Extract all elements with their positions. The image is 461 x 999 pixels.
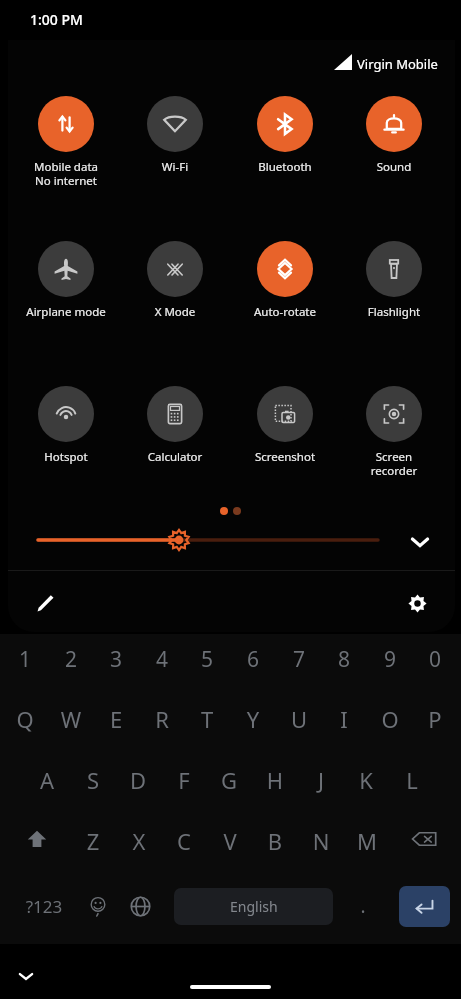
staticText: X bbox=[119, 826, 159, 856]
staticText: B bbox=[255, 826, 295, 856]
staticText: I bbox=[324, 704, 364, 734]
button[interactable]: ?123 bbox=[16, 895, 72, 918]
button[interactable]: Screen recorder bbox=[348, 386, 440, 478]
button[interactable]: Shift bbox=[16, 818, 58, 860]
button[interactable]: Calculator bbox=[129, 386, 221, 465]
staticText: P bbox=[415, 704, 455, 734]
staticText: U bbox=[279, 704, 319, 734]
staticText: Q bbox=[5, 704, 45, 734]
staticText: Mobile data No internet bbox=[20, 159, 112, 188]
staticText: 5 bbox=[187, 645, 227, 674]
staticText: Sound bbox=[348, 159, 440, 175]
button[interactable]: English bbox=[174, 888, 333, 925]
staticText: 1:00 PM bbox=[30, 10, 83, 29]
staticText: V bbox=[210, 826, 250, 856]
staticText: E bbox=[96, 704, 136, 734]
staticText: Y bbox=[233, 704, 273, 734]
staticText: G bbox=[209, 765, 249, 795]
button[interactable]: Bluetooth bbox=[239, 96, 331, 175]
staticText: L bbox=[392, 765, 432, 795]
staticText: 1 bbox=[5, 645, 45, 674]
button[interactable]: Change language bbox=[118, 884, 162, 928]
staticText: D bbox=[118, 765, 158, 795]
staticText: 2 bbox=[51, 645, 91, 674]
button[interactable]: Hotspot bbox=[20, 386, 112, 465]
staticText: Bluetooth bbox=[239, 159, 331, 175]
button[interactable]: Screenshot bbox=[239, 386, 331, 465]
staticText: J bbox=[301, 765, 341, 795]
staticText: 9 bbox=[370, 645, 410, 674]
staticText: Virgin Mobile bbox=[357, 55, 438, 73]
button[interactable]: Settings bbox=[398, 584, 436, 622]
staticText: Screen recorder bbox=[348, 449, 440, 478]
staticText: 6 bbox=[233, 645, 273, 674]
button[interactable]: Edit tiles bbox=[26, 584, 64, 622]
staticText: N bbox=[301, 826, 341, 856]
staticText: English bbox=[230, 897, 278, 916]
staticText: A bbox=[27, 765, 67, 795]
staticText: M bbox=[347, 826, 387, 856]
button[interactable]: . bbox=[348, 893, 378, 919]
staticText: 0 bbox=[415, 645, 455, 674]
staticText: 8 bbox=[324, 645, 364, 674]
staticText: X Mode bbox=[129, 304, 221, 320]
staticText: W bbox=[51, 704, 91, 734]
staticText: Hotspot bbox=[20, 449, 112, 465]
button[interactable]: Backspace bbox=[403, 818, 445, 860]
staticText: Airplane mode bbox=[20, 304, 112, 320]
button[interactable]: Sound bbox=[348, 96, 440, 175]
staticText: C bbox=[164, 826, 204, 856]
staticText: Auto-rotate bbox=[239, 304, 331, 320]
staticText: O bbox=[370, 704, 410, 734]
staticText: Calculator bbox=[129, 449, 221, 465]
staticText: K bbox=[346, 765, 386, 795]
button[interactable]: Mobile data No internet bbox=[20, 96, 112, 188]
staticText: T bbox=[187, 704, 227, 734]
button[interactable]: Wi-Fi bbox=[129, 96, 221, 175]
button[interactable]: Auto-rotate bbox=[239, 241, 331, 320]
staticText: Screenshot bbox=[239, 449, 331, 465]
button[interactable]: X Mode bbox=[129, 241, 221, 320]
button[interactable]: Hide keyboard bbox=[10, 960, 42, 992]
button[interactable]: Emoji bbox=[76, 884, 120, 928]
staticText: Flashlight bbox=[348, 304, 440, 320]
staticText: 3 bbox=[96, 645, 136, 674]
staticText: 7 bbox=[279, 645, 319, 674]
button[interactable]: Collapse quick settings bbox=[400, 522, 440, 562]
staticText: S bbox=[73, 765, 113, 795]
staticText: F bbox=[164, 765, 204, 795]
button[interactable]: Flashlight bbox=[348, 241, 440, 320]
staticText: R bbox=[142, 704, 182, 734]
button[interactable]: Airplane mode bbox=[20, 241, 112, 320]
staticText: Z bbox=[73, 826, 113, 856]
staticText: Wi-Fi bbox=[129, 159, 221, 175]
staticText: H bbox=[255, 765, 295, 795]
button[interactable]: Enter bbox=[399, 886, 450, 927]
staticText: 4 bbox=[142, 645, 182, 674]
